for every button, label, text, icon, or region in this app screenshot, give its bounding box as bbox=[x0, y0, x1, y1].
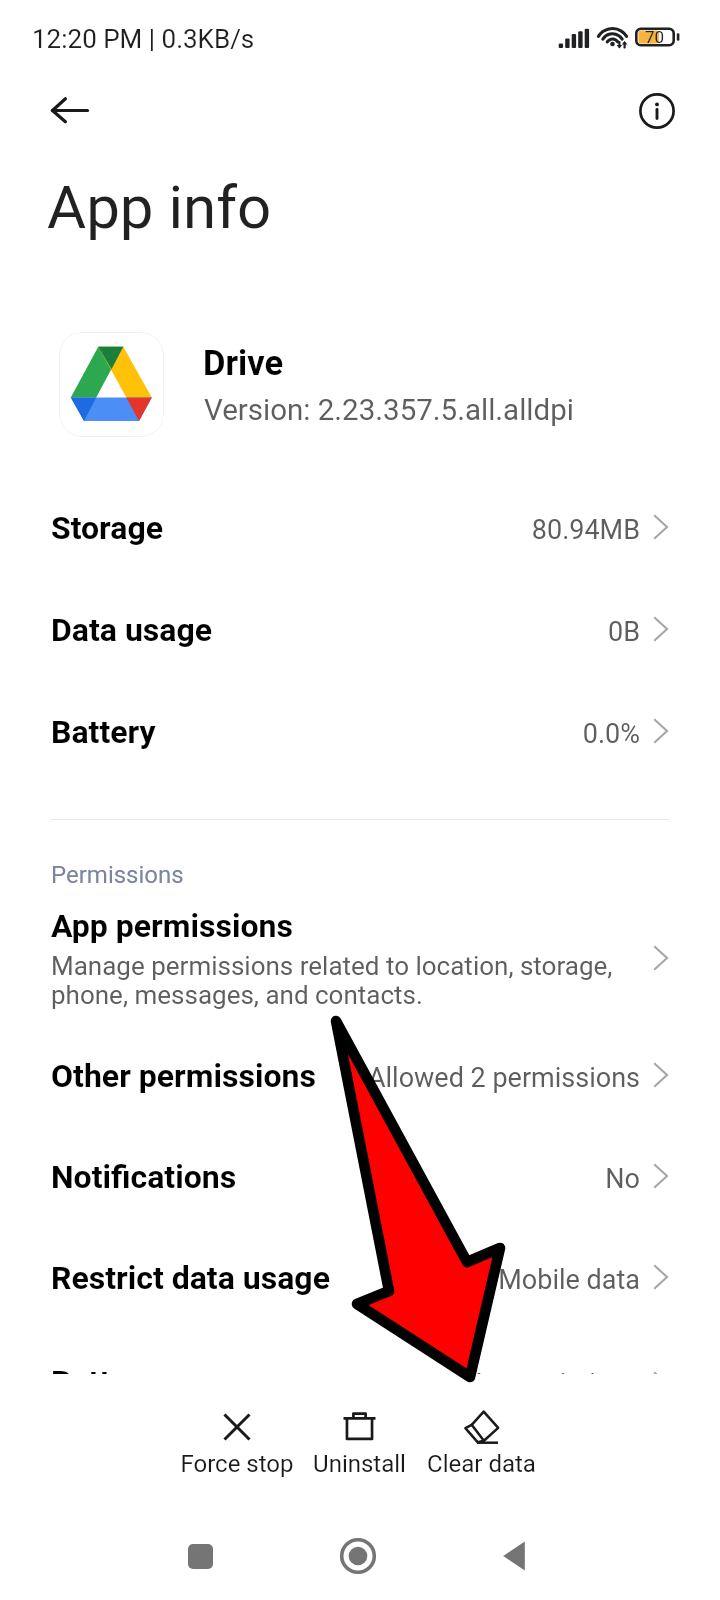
button[interactable]: Data usage bbox=[0, 567, 720, 668]
staticText: Force stop bbox=[180, 1450, 294, 1478]
button[interactable]: Restrict data usage bbox=[0, 1215, 720, 1316]
staticText: Allowed 2 permissions bbox=[367, 1062, 640, 1094]
staticText: No bbox=[605, 1163, 640, 1195]
staticText: Battery bbox=[51, 713, 156, 751]
staticText: Notifications bbox=[51, 1158, 237, 1196]
staticText: Drive bbox=[203, 343, 284, 383]
staticText: 0.0% bbox=[582, 718, 640, 750]
staticText: Permissions bbox=[51, 861, 184, 889]
button[interactable]: Battery bbox=[0, 669, 720, 770]
button[interactable]: Force stop bbox=[179, 1400, 295, 1488]
button[interactable]: Other permissions bbox=[0, 1013, 720, 1114]
staticText: App info bbox=[47, 172, 272, 242]
staticText: 70 bbox=[645, 27, 665, 47]
button[interactable]: Battery saver bbox=[0, 1340, 720, 1441]
button[interactable]: App permissions bbox=[0, 900, 720, 1018]
button[interactable]: Back bbox=[36, 77, 102, 143]
button[interactable]: Recent apps bbox=[164, 1520, 236, 1592]
staticText: Uninstall bbox=[313, 1450, 406, 1478]
staticText: 12:20 PM | 0.3KB/s bbox=[32, 24, 255, 54]
staticText: App permissions bbox=[51, 907, 293, 945]
staticText: Clear data bbox=[427, 1450, 536, 1478]
staticText: 80.94MB bbox=[531, 514, 640, 546]
button[interactable]: Drive bbox=[0, 310, 720, 458]
staticText: Battery saver bbox=[51, 1363, 242, 1401]
button[interactable]: Storage bbox=[0, 465, 720, 566]
staticText: Other permissions bbox=[51, 1057, 316, 1095]
staticText: Storage bbox=[51, 509, 164, 547]
button[interactable]: Back bbox=[478, 1520, 550, 1592]
staticText: Mobile data bbox=[498, 1264, 640, 1296]
staticText: No restrictions bbox=[463, 1368, 640, 1400]
staticText: Data usage bbox=[51, 611, 213, 649]
staticText: Manage permissions related to location, … bbox=[51, 951, 613, 1010]
staticText: Restrict data usage bbox=[51, 1259, 330, 1297]
button[interactable]: Home bbox=[322, 1520, 394, 1592]
button[interactable]: App details bbox=[624, 78, 690, 144]
button[interactable]: Clear data bbox=[423, 1400, 539, 1488]
button[interactable]: Uninstall bbox=[301, 1400, 417, 1488]
staticText: Version: 2.23.357.5.all.alldpi bbox=[204, 393, 574, 428]
staticText: 0B bbox=[608, 616, 640, 648]
button[interactable]: Notifications bbox=[0, 1114, 720, 1215]
